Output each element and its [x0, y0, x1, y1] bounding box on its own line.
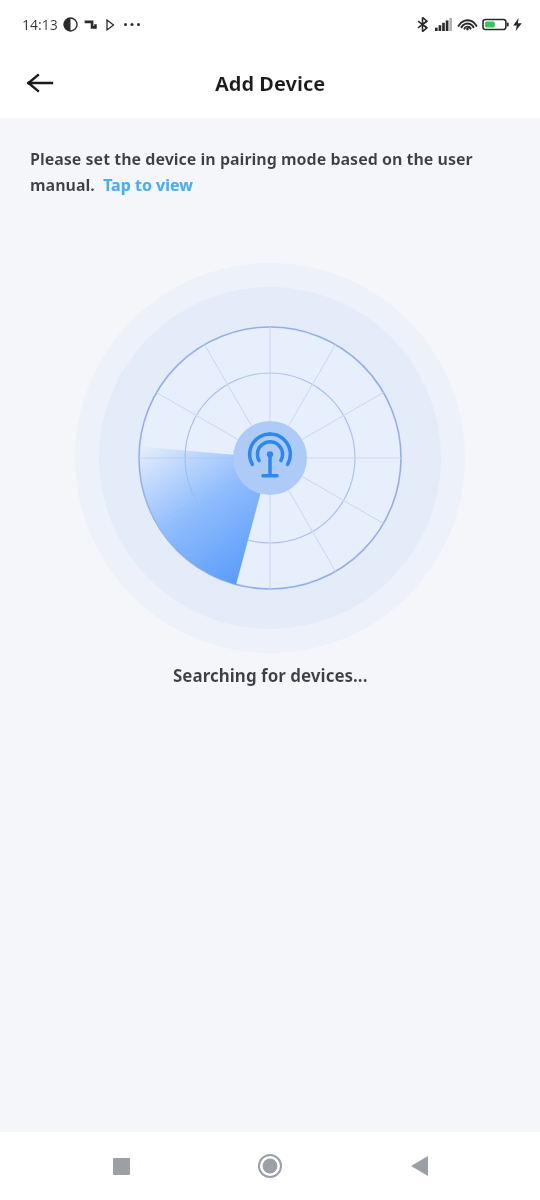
staticText: Please set the device in pairing mode ba…: [30, 148, 510, 196]
button[interactable]: Back: [391, 1138, 447, 1194]
button[interactable]: Back: [16, 59, 64, 107]
staticText: Searching for devices...: [173, 664, 368, 687]
button[interactable]: Home: [242, 1138, 298, 1194]
button[interactable]: Recent apps: [93, 1138, 149, 1194]
staticText: 14:13: [22, 15, 58, 34]
button[interactable]: Searching for devices: [70, 258, 470, 658]
staticText: Add Device: [215, 70, 326, 97]
